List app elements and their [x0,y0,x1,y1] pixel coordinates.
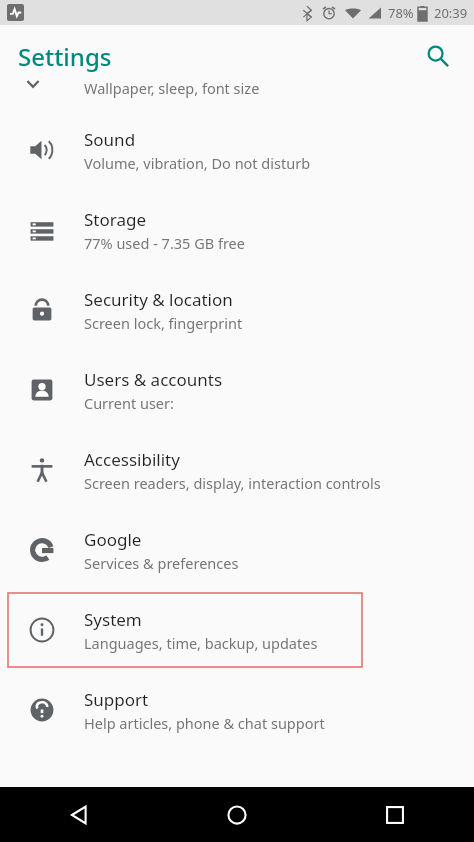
staticText: System [84,608,142,631]
staticText: Users & accounts [84,368,223,391]
staticText: Sound [84,128,136,151]
button[interactable]: Home [158,787,316,842]
staticText: Wallpaper, sleep, font size [84,78,260,98]
button[interactable]: Google [0,510,474,590]
staticText: Support [84,688,149,711]
staticText: Accessibility [84,448,180,471]
staticText: Storage [84,208,147,231]
staticText: 77% used - 7.35 GB free [84,233,245,253]
button[interactable]: Wallpaper, sleep, font size [0,87,474,110]
staticText: 20:39 [434,4,468,22]
button[interactable]: Storage [0,190,474,270]
button[interactable]: Users & accounts [0,350,474,430]
staticText: Google [84,528,142,551]
staticText: Languages, time, backup, updates [84,633,318,653]
staticText: Settings [18,40,112,73]
button[interactable]: Recent apps [316,787,474,842]
staticText: Services & preferences [84,553,239,573]
staticText: Help articles, phone & chat support [84,713,325,733]
staticText: Screen lock, fingerprint [84,313,243,333]
staticText: Screen readers, display, interaction con… [84,473,381,493]
button[interactable]: System [0,590,474,670]
staticText: 78% [388,4,414,22]
button[interactable]: Search [414,32,462,80]
staticText: Current user: [84,393,174,413]
button[interactable]: Support [0,670,474,750]
button[interactable]: Back [0,787,158,842]
button[interactable]: Sound [0,110,474,190]
button[interactable]: Security & location [0,270,474,350]
staticText: Volume, vibration, Do not disturb [84,153,311,173]
button[interactable]: Accessibility [0,430,474,510]
staticText: Security & location [84,288,233,311]
